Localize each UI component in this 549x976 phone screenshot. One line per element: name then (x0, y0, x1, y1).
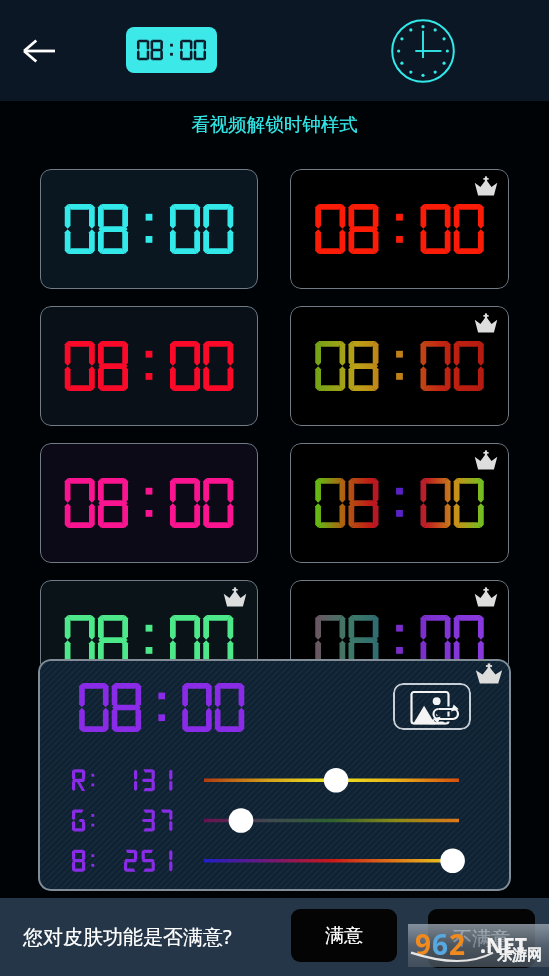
button[interactable] (290, 306, 509, 426)
staticText: 不满意 (453, 927, 510, 951)
staticText: .NET (480, 931, 527, 960)
button[interactable]: Back (14, 26, 64, 76)
staticText: 2 (449, 925, 466, 963)
button[interactable] (290, 580, 509, 700)
staticText: 9 (415, 925, 432, 963)
button[interactable] (290, 443, 509, 563)
staticText: 满意 (325, 924, 363, 948)
button[interactable] (40, 306, 258, 426)
button[interactable]: 您对皮肤功能是否满意? (23, 923, 232, 950)
button[interactable]: Clock preview (388, 16, 457, 85)
button[interactable] (40, 580, 258, 700)
button[interactable] (40, 443, 258, 563)
staticText: 6 (432, 925, 449, 963)
button[interactable] (126, 27, 217, 73)
staticText: 乐游网 (497, 946, 542, 965)
button[interactable]: 不满意 (428, 909, 535, 968)
button[interactable]: 满意 (291, 909, 397, 962)
button[interactable]: 看视频解锁时钟样式 (191, 113, 358, 136)
button[interactable] (290, 169, 509, 289)
button[interactable] (40, 169, 258, 289)
button[interactable]: Change wallpaper (393, 683, 471, 730)
